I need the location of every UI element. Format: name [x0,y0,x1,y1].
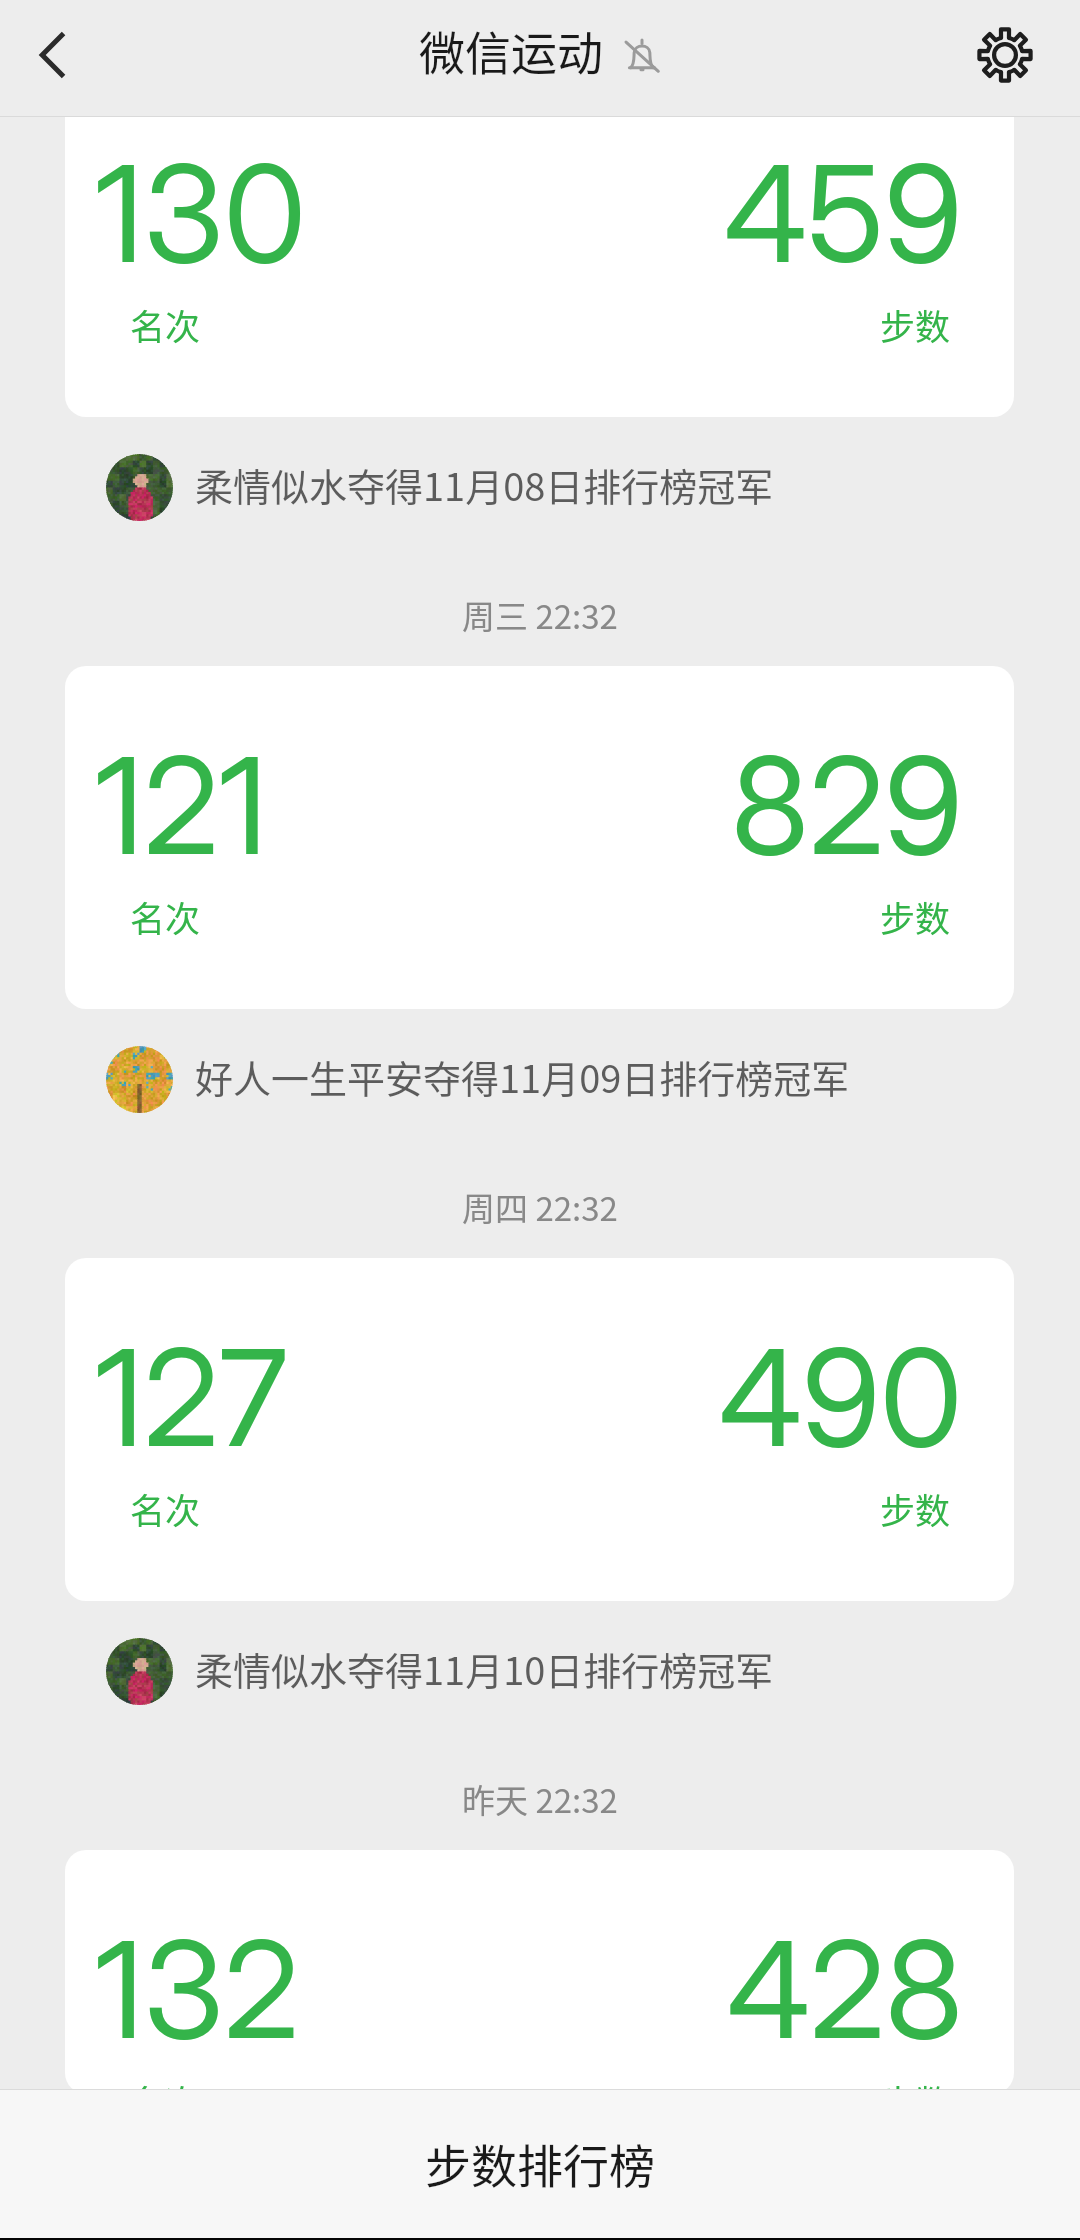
button[interactable]: Settings [957,7,1052,102]
staticText: 459 [724,132,963,294]
button[interactable]: 好人一生平安夺得11月09日排行榜冠军 [0,1009,1080,1155]
staticText: 周四 22:32 [462,1183,618,1231]
staticText: 428 [727,1908,963,2070]
staticText: 121 [95,724,268,886]
button[interactable]: 130 [65,117,1014,417]
button[interactable]: 132 [65,1850,1014,2094]
staticText: 步数 [880,299,951,350]
button[interactable]: Back [4,8,100,102]
staticText: 周三 22:32 [462,591,618,639]
button[interactable]: 柔情似水夺得11月08日排行榜冠军 [0,417,1080,563]
staticText: 名次 [130,2075,201,2094]
staticText: 132 [95,1908,299,2070]
staticText: 490 [719,1316,963,1478]
staticText: 步数 [880,2075,951,2094]
staticText: 柔情似水夺得11月10日排行榜冠军 [195,1641,774,1696]
staticText: 130 [95,132,306,294]
staticText: 步数 [880,1483,951,1534]
staticText: 127 [95,1316,288,1478]
button[interactable]: 步数排行榜 [0,2089,1080,2238]
button[interactable]: 柔情似水夺得11月10日排行榜冠军 [0,1601,1080,1747]
staticText: 步数排行榜 [425,2130,655,2197]
staticText: 名次 [130,891,201,942]
staticText: 名次 [130,299,201,350]
staticText: 柔情似水夺得11月08日排行榜冠军 [195,457,774,512]
staticText: 名次 [130,1483,201,1534]
button[interactable]: 121 [65,666,1014,1009]
button[interactable]: 127 [65,1258,1014,1601]
staticText: 昨天 22:32 [462,1775,618,1823]
button[interactable]: Notifications muted [606,16,678,92]
staticText: 好人一生平安夺得11月09日排行榜冠军 [195,1049,850,1104]
staticText: 829 [731,724,963,886]
staticText: 步数 [880,891,951,942]
staticText: 微信运动 [419,17,603,84]
